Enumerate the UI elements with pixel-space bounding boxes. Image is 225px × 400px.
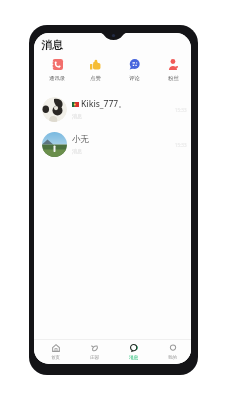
staticText: 消息 [41,38,63,52]
button[interactable]: 消息 [114,344,153,361]
staticText: 评论 [129,75,140,82]
button[interactable]: 我的 [153,344,191,361]
staticText: 首页 [51,355,60,361]
button[interactable]: 庄园 [75,344,114,361]
button[interactable]: 通讯录 [38,59,76,82]
staticText: 消息 [72,148,82,154]
button[interactable]: 首页 [36,344,75,361]
button[interactable]: 点赞 [76,59,115,82]
staticText: 消息 [129,355,138,361]
staticText: 点赞 [90,75,101,82]
staticText: Kikis_777。 [81,98,127,110]
button[interactable]: 评论 [115,59,154,82]
button[interactable]: Kikis_777。 [34,92,191,127]
staticText: 消息 [72,113,82,119]
button[interactable]: 粉丝 [154,59,191,82]
staticText: 15:33 [175,142,187,148]
button[interactable]: 小无 [34,127,191,162]
staticText: 小无 [72,134,89,145]
staticText: 通讯录 [49,75,66,82]
staticText: 我的 [168,355,177,361]
staticText: 15:33 [175,107,187,113]
staticText: 粉丝 [168,75,179,82]
staticText: 庄园 [90,355,99,361]
